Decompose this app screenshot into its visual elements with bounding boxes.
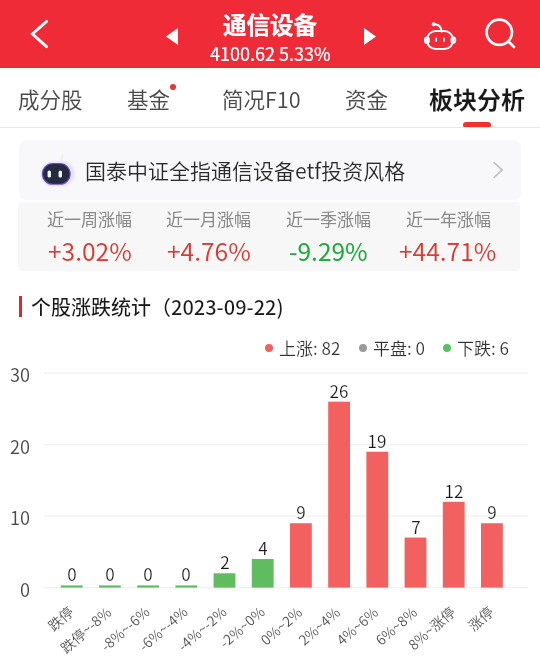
staticText: 下跌: 6 — [457, 335, 509, 360]
staticText: 20 — [0, 433, 30, 459]
staticText: 9 — [472, 499, 512, 524]
staticText: 2%~4% — [294, 601, 345, 649]
staticText: +3.02% — [48, 233, 132, 268]
staticText: 7 — [396, 514, 436, 539]
staticText: -6%~-4% — [134, 601, 191, 655]
staticText: 近一季涨幅 — [286, 206, 371, 231]
staticText: 通信设备 — [223, 7, 317, 41]
staticText: 近一年涨幅 — [406, 206, 491, 231]
staticText: 个股涨跌统计（2023-09-22) — [31, 292, 284, 321]
staticText: 跌停~-8% — [56, 601, 115, 657]
staticText: 0 — [52, 561, 92, 586]
staticText: 19 — [357, 428, 397, 453]
staticText: +44.71% — [399, 233, 497, 268]
staticText: 30 — [0, 361, 30, 387]
staticText: 6%~8% — [371, 601, 422, 649]
button[interactable]: 资金 — [307, 68, 427, 132]
staticText: 12 — [434, 478, 474, 503]
button[interactable]: 基金 — [89, 68, 209, 132]
staticText: 0%~2% — [256, 601, 307, 649]
staticText: 8%~涨停 — [403, 601, 459, 654]
staticText: 4%~6% — [332, 601, 383, 649]
button[interactable]: 板块分析 — [417, 68, 537, 132]
button[interactable]: Search — [480, 13, 524, 57]
staticText: -8%~-6% — [96, 601, 153, 655]
staticText: 资金 — [345, 83, 389, 114]
staticText: -4%~-2% — [173, 601, 230, 655]
staticText: 简况F10 — [222, 83, 301, 114]
staticText: 基金 — [127, 83, 171, 114]
staticText: 上涨: 82 — [279, 335, 341, 360]
staticText: 0 — [90, 561, 130, 586]
staticText: 国泰中证全指通信设备etf投资风格 — [85, 155, 406, 185]
staticText: 板块分析 — [429, 81, 525, 116]
button[interactable]: Next sector — [350, 16, 390, 56]
staticText: 10 — [0, 504, 30, 530]
staticText: -2%~0% — [215, 601, 269, 652]
button[interactable]: AI assistant — [417, 12, 462, 57]
staticText: 近一月涨幅 — [166, 206, 251, 231]
button[interactable]: 简况F10 — [201, 68, 321, 132]
staticText: 2 — [205, 549, 245, 574]
button[interactable]: Back — [15, 10, 63, 58]
button[interactable]: 国泰中证全指通信设备etf投资风格 — [19, 140, 521, 200]
staticText: 0 — [0, 576, 30, 602]
staticText: -9.29% — [289, 233, 368, 268]
staticText: +4.76% — [167, 233, 251, 268]
staticText: 近一周涨幅 — [47, 206, 132, 231]
button[interactable]: 成分股 — [0, 68, 110, 132]
button[interactable]: Previous sector — [152, 16, 192, 56]
staticText: 26 — [319, 378, 359, 403]
staticText: 0 — [166, 561, 206, 586]
staticText: 跌停 — [43, 601, 78, 635]
staticText: 平盘: 0 — [373, 335, 425, 360]
staticText: 涨停 — [463, 601, 498, 635]
staticText: 4100.62 5.33% — [210, 40, 331, 66]
staticText: 0 — [128, 561, 168, 586]
staticText: 成分股 — [18, 83, 83, 114]
staticText: 4 — [243, 535, 283, 560]
staticText: 9 — [281, 499, 321, 524]
